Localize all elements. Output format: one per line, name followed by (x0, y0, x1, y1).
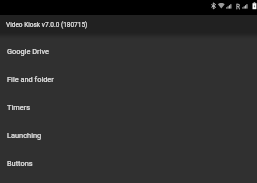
staticText: R (236, 3, 240, 11)
staticText: Launching (7, 131, 42, 140)
button[interactable]: Launching (0, 121, 257, 149)
button[interactable]: Google Drive (0, 37, 257, 65)
staticText: Timers (7, 103, 30, 112)
button[interactable]: Timers (0, 93, 257, 121)
staticText: File and folder (7, 75, 54, 84)
button[interactable]: File and folder (0, 65, 257, 93)
staticText: Google Drive (7, 47, 49, 56)
staticText: Video Kiosk v7.0.0 (180715) (6, 21, 88, 29)
staticText: Buttons (7, 159, 33, 168)
button[interactable]: Buttons (0, 149, 257, 177)
other: Status icons (0, 0, 257, 15)
